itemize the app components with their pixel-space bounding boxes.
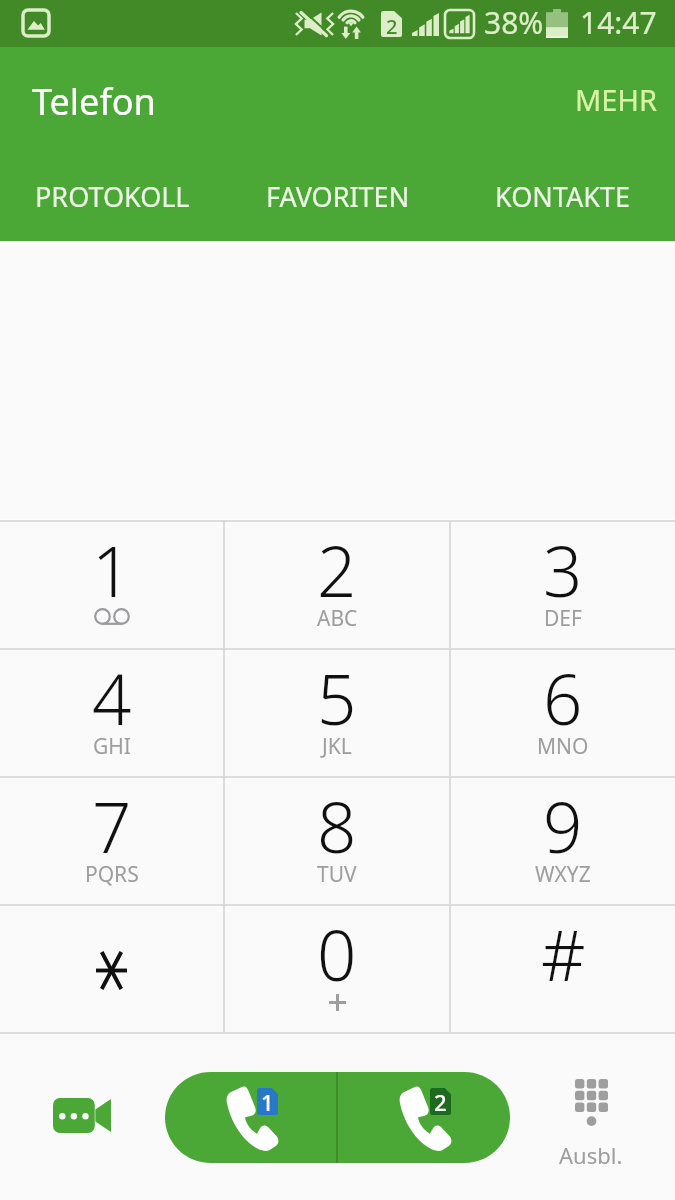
button[interactable]: 7: [0, 778, 223, 904]
staticText: 9: [543, 779, 583, 873]
button[interactable]: Video call: [44, 1085, 120, 1145]
button[interactable]: 8: [225, 778, 449, 904]
staticText: Telefon: [32, 77, 156, 126]
staticText: 6: [543, 651, 583, 745]
staticText: 0: [317, 907, 357, 1001]
button[interactable]: PROTOKOLL: [0, 159, 225, 241]
button[interactable]: Call with SIM 2: [338, 1072, 510, 1163]
staticText: WXYZ: [535, 860, 591, 889]
staticText: 4: [92, 651, 132, 745]
staticText: JKL: [322, 732, 352, 761]
button[interactable]: Ausbl.: [545, 1074, 637, 1175]
staticText: MEHR: [575, 80, 657, 119]
button[interactable]: FAVORITEN: [225, 159, 450, 241]
staticText: 2: [434, 1087, 447, 1114]
staticText: PROTOKOLL: [35, 178, 190, 215]
staticText: 2: [317, 523, 357, 617]
button[interactable]: MEHR: [557, 64, 675, 135]
staticText: PQRS: [85, 860, 139, 889]
button[interactable]: [0, 906, 223, 1032]
staticText: MNO: [537, 732, 589, 761]
button[interactable]: 0: [225, 906, 449, 1032]
staticText: ABC: [317, 604, 358, 633]
button[interactable]: 6: [451, 650, 675, 776]
staticText: 3: [543, 523, 583, 617]
staticText: TUV: [317, 860, 357, 889]
staticText: 1: [92, 523, 132, 617]
staticText: 8: [317, 779, 357, 873]
staticText: 2: [386, 13, 398, 40]
button[interactable]: 3: [451, 522, 675, 648]
staticText: 14:47: [580, 2, 657, 43]
staticText: 1: [261, 1087, 274, 1114]
button[interactable]: 2: [225, 522, 449, 648]
staticText: FAVORITEN: [266, 178, 410, 215]
staticText: 5: [317, 651, 357, 745]
staticText: DEF: [544, 604, 582, 633]
button[interactable]: 9: [451, 778, 675, 904]
button[interactable]: 4: [0, 650, 223, 776]
staticText: 7: [92, 779, 132, 873]
button[interactable]: #: [451, 906, 675, 1032]
staticText: #: [541, 907, 586, 1001]
staticText: KONTAKTE: [495, 178, 630, 215]
staticText: GHI: [93, 732, 131, 761]
button[interactable]: Call with SIM 1: [165, 1072, 336, 1163]
button[interactable]: 5: [225, 650, 449, 776]
button[interactable]: KONTAKTE: [450, 159, 675, 241]
staticText: Ausbl.: [559, 1140, 623, 1170]
button[interactable]: 1: [0, 522, 223, 648]
staticText: 38%: [484, 2, 544, 43]
